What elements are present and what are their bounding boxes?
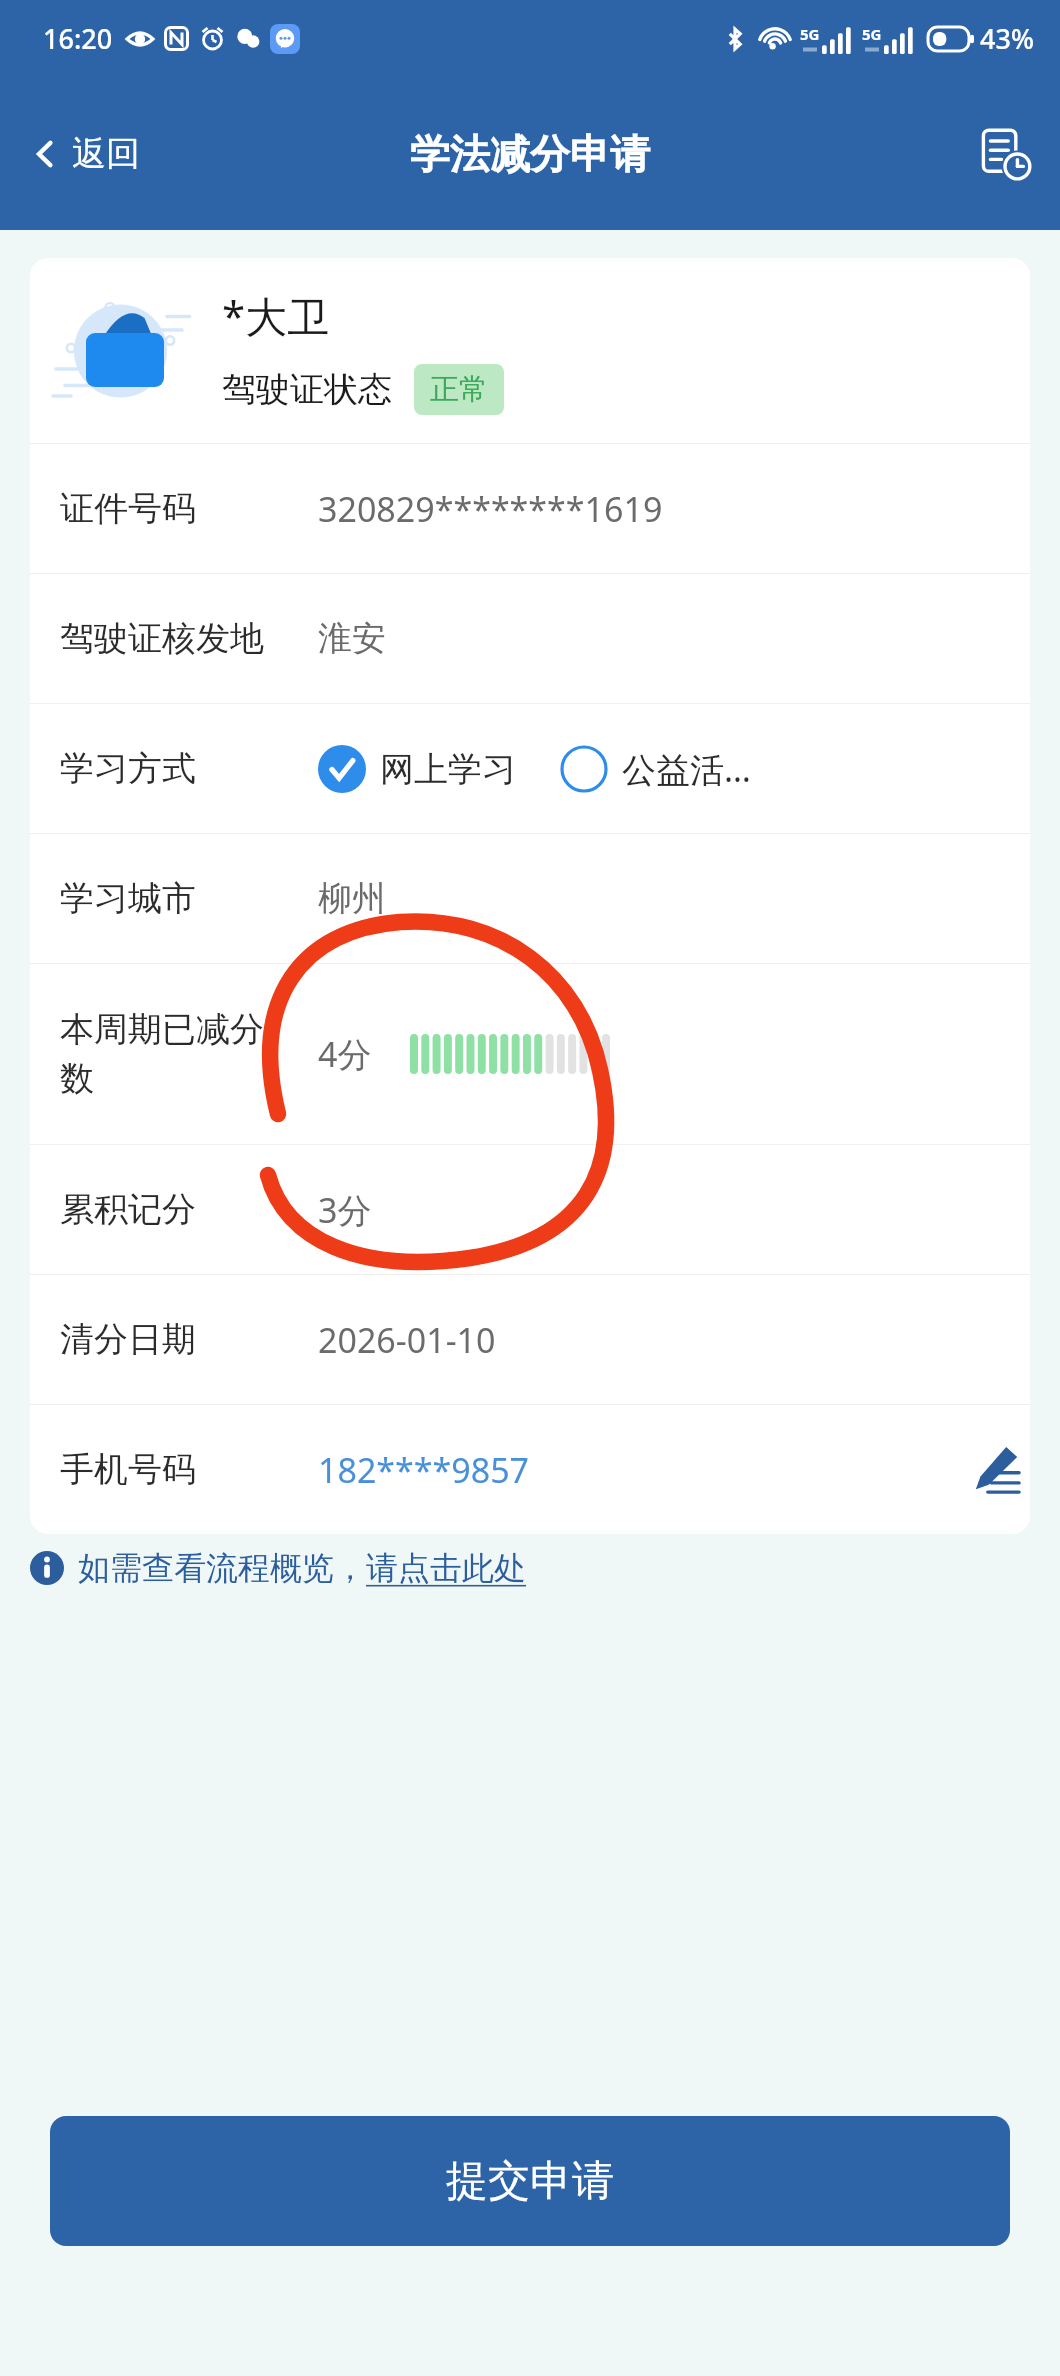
button[interactable]: 清分日期 <box>30 1275 1030 1404</box>
staticText: 公益活… <box>622 746 751 792</box>
staticText: 网上学习 <box>380 748 516 791</box>
staticText: 返回 <box>72 132 140 175</box>
staticText: 正常 <box>430 371 488 408</box>
button[interactable]: 返回 <box>22 122 148 185</box>
staticText: 182****9857 <box>318 1447 530 1493</box>
staticText: 3分 <box>318 1187 372 1233</box>
button[interactable]: *大卫 <box>30 258 1030 443</box>
staticText: 证件号码 <box>60 487 290 530</box>
staticText: 2026-01-10 <box>318 1317 496 1363</box>
staticText: 驾驶证状态 <box>222 368 392 411</box>
button[interactable]: 驾驶证核发地 <box>30 574 1030 703</box>
staticText: 4分 <box>318 1031 372 1077</box>
button[interactable]: 手机号码 <box>30 1405 1030 1534</box>
staticText: 学习方式 <box>60 747 290 790</box>
staticText: 43% <box>980 20 1034 57</box>
staticText: 驾驶证核发地 <box>60 617 290 660</box>
staticText: 320829********1619 <box>318 486 663 532</box>
button[interactable]: 公益活… <box>560 745 751 793</box>
staticText: 5G <box>800 24 820 44</box>
staticText: 提交申请 <box>446 2155 614 2208</box>
staticText: 清分日期 <box>60 1318 290 1361</box>
button[interactable]: 如需查看流程概览， <box>30 1548 1030 1588</box>
button[interactable]: 累积记分 <box>30 1145 1030 1274</box>
staticText: *大卫 <box>222 287 330 344</box>
button[interactable]: 修改手机号码 <box>964 1437 1030 1503</box>
button[interactable]: 提交申请 <box>50 2116 1010 2246</box>
staticText: 学法减分申请 <box>410 129 650 179</box>
button[interactable]: 本周期已减分数 <box>30 964 1030 1144</box>
staticText: 5G <box>862 24 882 44</box>
staticText: 本周期已减分数 <box>60 1008 290 1100</box>
button[interactable]: 学习城市 <box>30 834 1030 963</box>
button[interactable]: 学习记录 <box>970 119 1040 189</box>
staticText: 请点击此处 <box>366 1548 526 1588</box>
staticText: 16:20 <box>43 20 113 57</box>
staticText: 淮安 <box>318 617 386 660</box>
staticText: 手机号码 <box>60 1448 290 1491</box>
staticText: 学习城市 <box>60 877 290 920</box>
button[interactable]: 证件号码 <box>30 444 1030 573</box>
button[interactable]: 网上学习 <box>318 745 516 793</box>
staticText: 如需查看流程概览， <box>78 1548 366 1588</box>
staticText: 柳州 <box>318 877 386 920</box>
staticText: 累积记分 <box>60 1188 290 1231</box>
